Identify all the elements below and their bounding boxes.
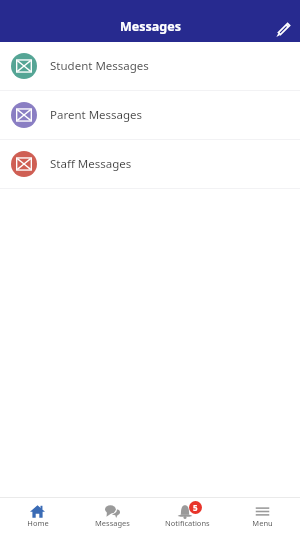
staticText: Student Messages <box>50 58 149 74</box>
staticText: Parent Messages <box>50 107 143 123</box>
staticText: Notifications <box>165 518 210 528</box>
staticText: Menu <box>252 518 273 528</box>
staticText: Home <box>27 518 49 528</box>
button[interactable]: Messages <box>75 498 150 533</box>
staticText: Messages <box>120 18 181 35</box>
button[interactable]: Staff Messages <box>0 140 300 188</box>
button[interactable]: Compose message <box>260 1 300 41</box>
button[interactable]: Student Messages <box>0 42 300 90</box>
staticText: Messages <box>95 518 130 528</box>
button[interactable]: Home <box>0 498 75 533</box>
staticText: 5 <box>193 502 198 513</box>
button[interactable]: Notifications, 5 unread <box>150 498 225 533</box>
button[interactable]: Parent Messages <box>0 91 300 139</box>
button[interactable]: Menu <box>225 498 300 533</box>
staticText: Staff Messages <box>50 156 132 172</box>
